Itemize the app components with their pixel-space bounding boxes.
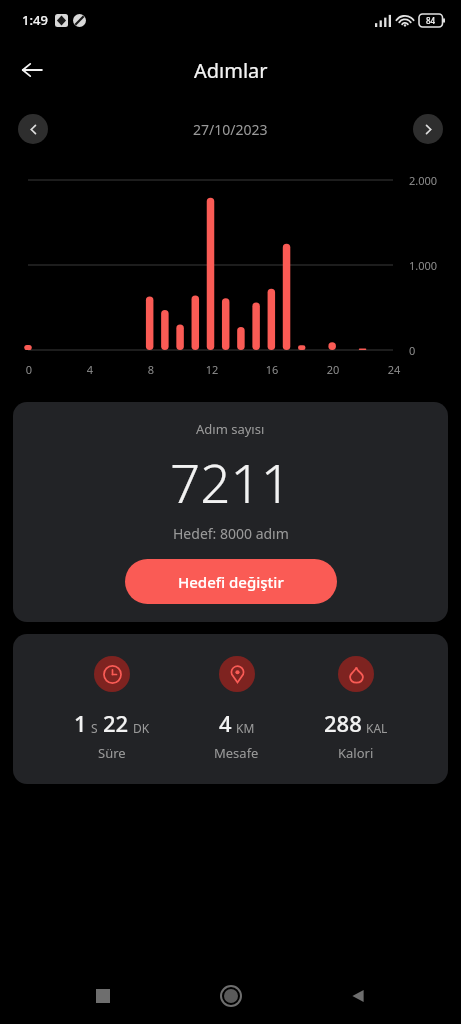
button[interactable]: Adım sayısı bbox=[13, 402, 448, 622]
staticText: 1:49 bbox=[22, 11, 48, 29]
staticText: 1.000 bbox=[409, 258, 438, 273]
staticText: KM bbox=[236, 720, 255, 736]
button[interactable]: Back bbox=[334, 972, 382, 1020]
staticText: Mesafe bbox=[214, 744, 259, 762]
staticText: 7211 bbox=[170, 446, 292, 518]
button[interactable]: Next day bbox=[413, 114, 443, 144]
staticText: 4 bbox=[83, 362, 97, 377]
button[interactable]: 288 bbox=[320, 656, 392, 762]
staticText: 0 bbox=[22, 362, 36, 377]
staticText: Hedef: 8000 adım bbox=[173, 524, 289, 543]
staticText: Süre bbox=[98, 744, 126, 762]
button[interactable]: Recents bbox=[79, 972, 127, 1020]
button[interactable]: 4 bbox=[210, 656, 263, 762]
staticText: 4 bbox=[219, 708, 232, 738]
staticText: Adım sayısı bbox=[196, 420, 265, 438]
staticText: 27/10/2023 bbox=[193, 120, 268, 139]
staticText: 1 bbox=[74, 708, 87, 738]
staticText: 0 bbox=[409, 343, 416, 358]
staticText: 16 bbox=[265, 362, 279, 377]
staticText: 12 bbox=[205, 362, 219, 377]
staticText: DK bbox=[133, 720, 150, 736]
staticText: 2.000 bbox=[409, 173, 438, 188]
staticText: Kalori bbox=[338, 744, 374, 762]
staticText: KAL bbox=[366, 720, 388, 736]
button[interactable]: 1 bbox=[70, 656, 154, 762]
staticText: 8 bbox=[144, 362, 158, 377]
button[interactable]: Hedefi değiştir bbox=[125, 559, 337, 604]
staticText: 84 bbox=[426, 15, 436, 26]
staticText: Adımlar bbox=[194, 57, 268, 84]
staticText: 22 bbox=[103, 708, 129, 738]
staticText: 20 bbox=[326, 362, 340, 377]
staticText: S bbox=[91, 720, 98, 736]
staticText: 24 bbox=[387, 362, 401, 377]
button[interactable]: Home bbox=[207, 972, 255, 1020]
staticText: 288 bbox=[324, 708, 362, 738]
staticText: Hedefi değiştir bbox=[178, 572, 284, 592]
button[interactable]: Back bbox=[8, 46, 56, 94]
button[interactable]: Previous day bbox=[18, 114, 48, 144]
